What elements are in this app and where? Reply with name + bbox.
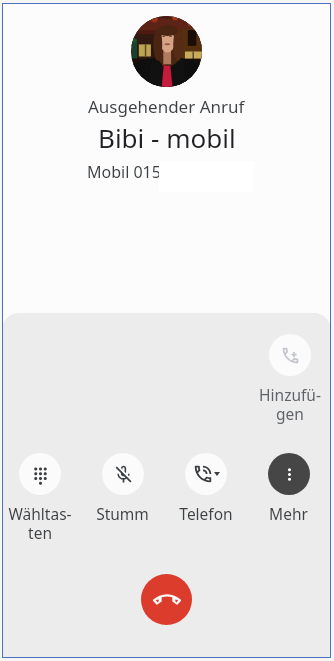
- button[interactable]: Anruf hinzufügen: [252, 334, 327, 425]
- staticText: Bibi - mobil: [98, 120, 236, 155]
- button[interactable]: Wähltasten: [2, 453, 77, 544]
- staticText: Mehr: [269, 503, 308, 524]
- staticText: Ausgehender Anruf: [88, 95, 245, 118]
- staticText: Wähltas- ten: [8, 503, 72, 544]
- button[interactable]: Telefon: [168, 453, 243, 524]
- staticText: Stumm: [96, 503, 149, 524]
- button[interactable]: Stumm: [85, 453, 160, 524]
- staticText: Mobil 015: [87, 161, 161, 183]
- staticText: Telefon: [179, 503, 233, 524]
- staticText: Hinzufü- gen: [259, 384, 321, 425]
- button[interactable]: Mehr: [251, 453, 326, 524]
- button[interactable]: Anruf beenden: [141, 574, 192, 625]
